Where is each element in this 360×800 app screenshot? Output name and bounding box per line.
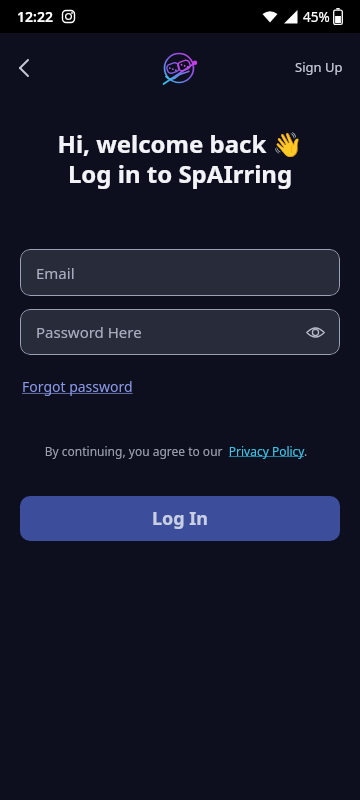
button[interactable]: Sign Up: [295, 58, 343, 76]
button[interactable]: Log In: [20, 496, 340, 541]
staticText: Log in to SpAIrring: [0, 157, 360, 190]
button[interactable]: Forgot password: [22, 377, 133, 396]
staticText: 45%: [303, 8, 330, 26]
button[interactable]: Email: [20, 249, 340, 296]
button[interactable]: [6, 50, 42, 86]
button[interactable]: [150, 38, 210, 98]
staticText: Password Here: [36, 322, 142, 342]
button[interactable]: Password Here: [20, 309, 340, 355]
button[interactable]: By continuing, you agree to our Privacy …: [0, 443, 356, 459]
staticText: Hi, welcome back 👋: [0, 127, 360, 160]
staticText: Email: [36, 263, 75, 283]
staticText: 12:22: [17, 7, 53, 26]
staticText: Log In: [152, 506, 209, 531]
